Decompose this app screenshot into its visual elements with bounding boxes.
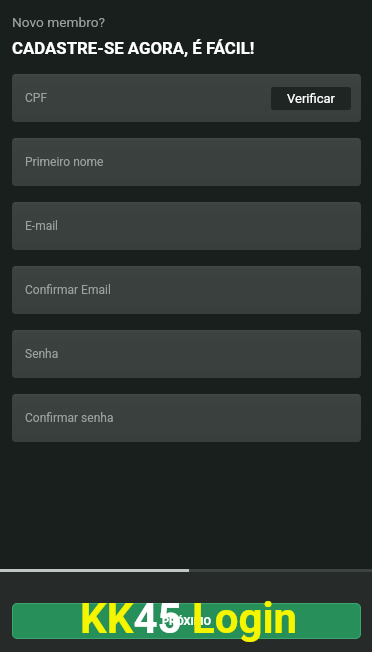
staticText: E-mail	[25, 219, 59, 233]
staticText: PRÓXIMO	[162, 615, 212, 628]
button[interactable]: Primeiro nome	[12, 138, 361, 186]
other: Progresso do cadastro	[0, 569, 372, 572]
button[interactable]: Verificar	[271, 87, 351, 110]
button[interactable]: CPF	[12, 74, 361, 122]
button[interactable]: Confirmar Email	[12, 266, 361, 314]
button[interactable]: PRÓXIMO	[12, 603, 361, 639]
staticText: Primeiro nome	[25, 155, 104, 169]
staticText: Verificar	[287, 91, 335, 106]
button[interactable]: Confirmar senha	[12, 394, 361, 442]
staticText: CADASTRE-SE AGORA, É FÁCIL!	[12, 38, 255, 58]
staticText: KK45 Login	[80, 594, 298, 643]
button[interactable]: Senha	[12, 330, 361, 378]
staticText: Confirmar Email	[25, 283, 111, 297]
staticText: Senha	[25, 347, 59, 361]
staticText: CPF	[25, 91, 48, 105]
staticText: Novo membro?	[12, 14, 105, 30]
button[interactable]: E-mail	[12, 202, 361, 250]
staticText: Confirmar senha	[25, 411, 114, 425]
